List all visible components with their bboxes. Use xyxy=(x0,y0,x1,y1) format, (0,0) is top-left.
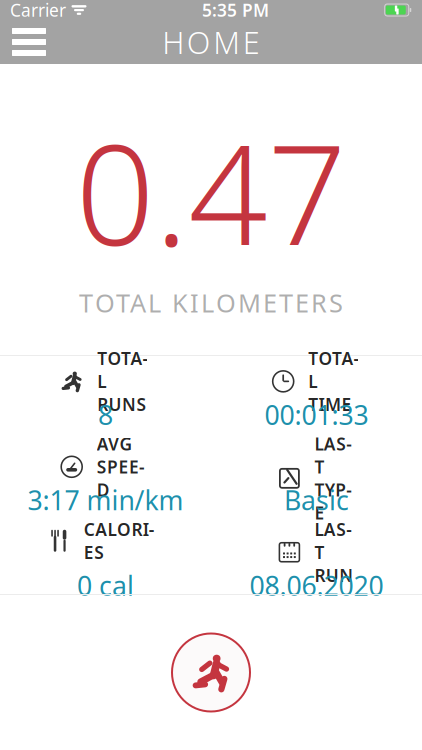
staticText: 08.06.2020 xyxy=(249,568,383,603)
staticText: Basic xyxy=(284,482,349,518)
staticText: LAST RUN xyxy=(314,518,353,587)
staticText: LAST TYPE xyxy=(314,432,352,524)
staticText: 8 xyxy=(98,397,113,432)
staticText: HOME xyxy=(162,22,260,62)
staticText: TOTAL TIME xyxy=(308,347,359,416)
staticText: 5:35 PM xyxy=(202,0,269,21)
staticText: TOTAL KILOMETERS xyxy=(79,286,343,319)
staticText: Carrier xyxy=(10,0,66,21)
staticText: AVG SPEED xyxy=(97,432,145,501)
staticText: TOTAL RUNS xyxy=(97,347,148,416)
button[interactable]: Start run xyxy=(169,630,253,714)
staticText: 0.47 xyxy=(75,100,346,284)
staticText: 00:01:33 xyxy=(264,397,368,432)
button[interactable]: Menu xyxy=(0,20,58,64)
staticText: 3:17 min/km xyxy=(27,482,183,518)
staticText: CALORIES xyxy=(84,518,155,564)
staticText: 0 cal xyxy=(77,568,134,603)
